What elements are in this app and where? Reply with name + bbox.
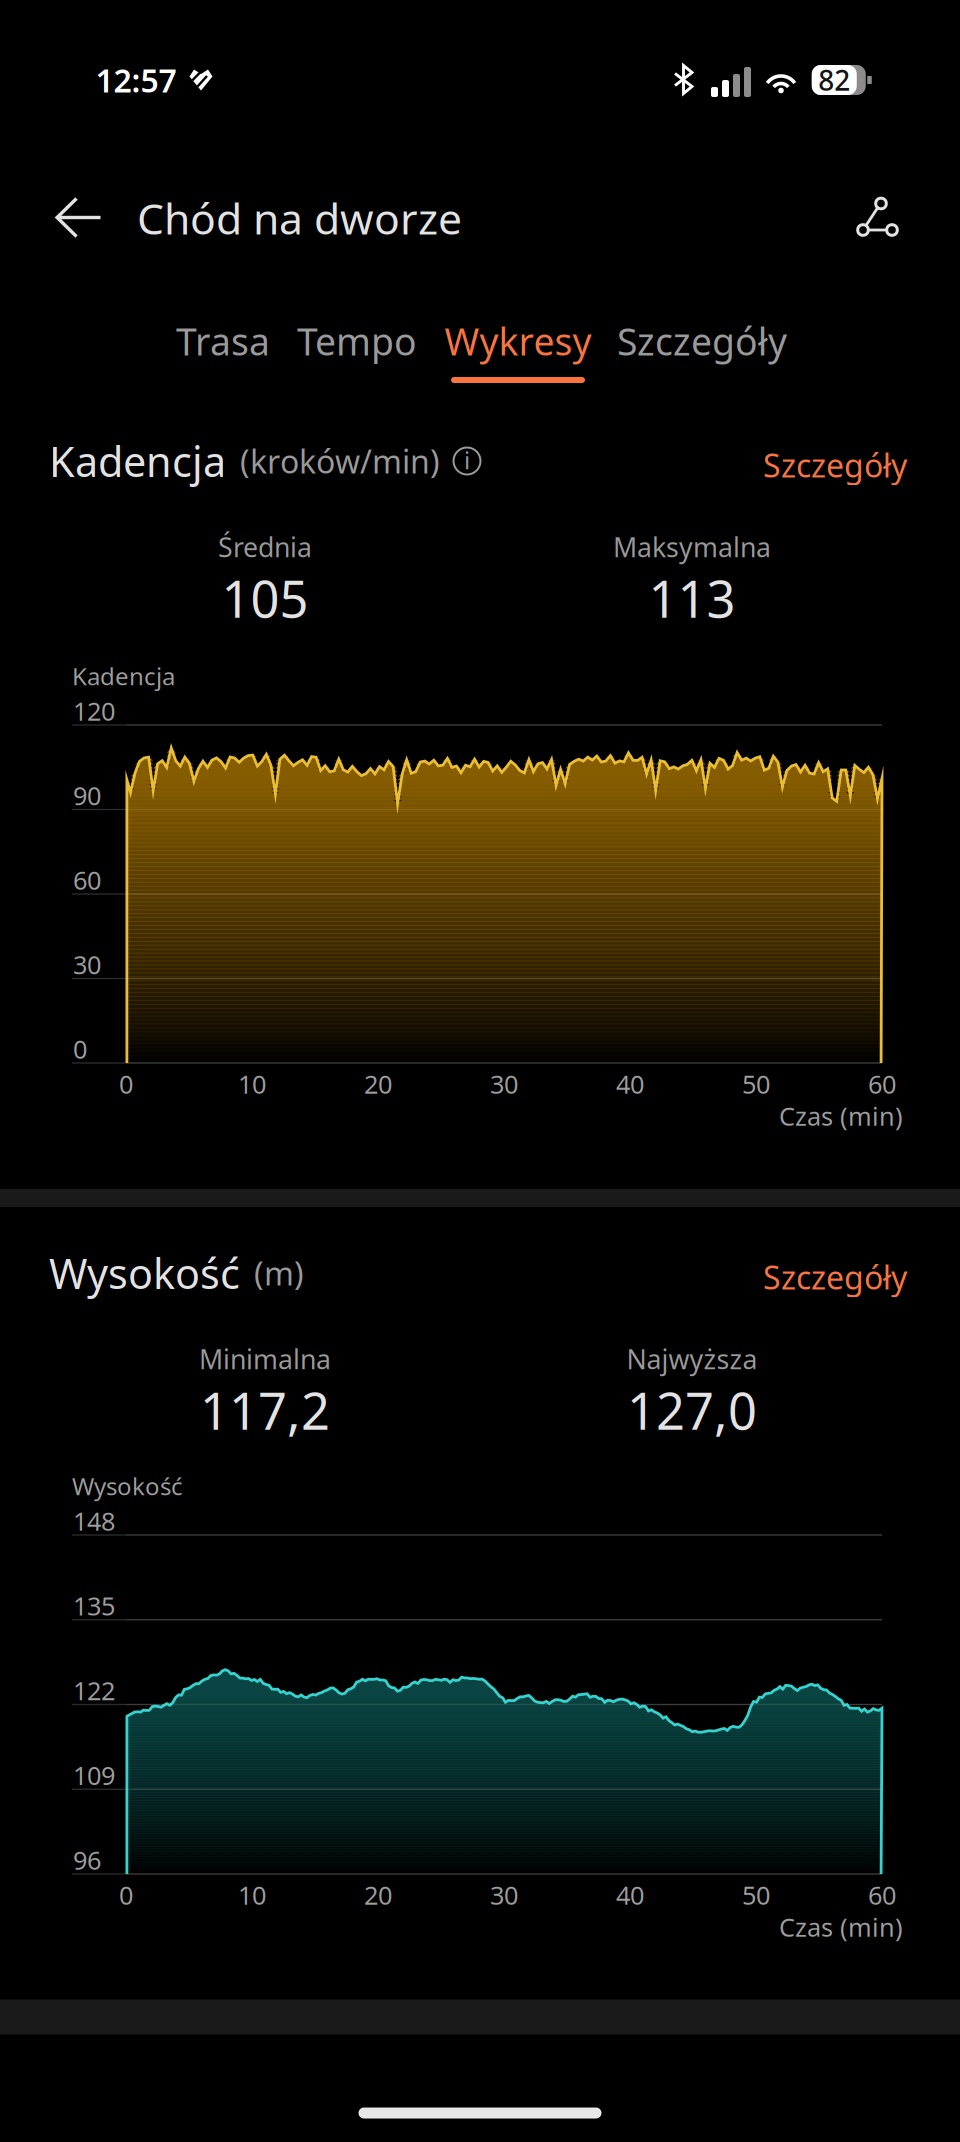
staticText: 122 (73, 1674, 115, 1707)
staticText: 30 (73, 948, 101, 981)
staticText: 90 (73, 779, 101, 812)
staticText: 60 (868, 1067, 896, 1101)
staticText: Czas (min) (779, 1910, 903, 1944)
staticText: 12:57 (95, 59, 176, 101)
staticText: 60 (73, 863, 101, 897)
staticText: 135 (73, 1589, 115, 1622)
staticText: Kadencja (49, 434, 226, 488)
button[interactable]: Tempo (292, 302, 422, 398)
staticText: (kroków/min) (240, 440, 440, 482)
staticText: Trasa (176, 316, 270, 366)
button[interactable]: Back (34, 173, 124, 263)
staticText: 0 (119, 1878, 133, 1912)
staticText: Wysokość (72, 1470, 183, 1502)
staticText: Szczegóły (763, 444, 907, 486)
staticText: 148 (73, 1504, 115, 1538)
staticText: 20 (364, 1878, 392, 1912)
staticText: Minimalna (199, 1341, 331, 1377)
staticText: 120 (73, 694, 115, 728)
button[interactable]: Szczegóły (612, 302, 791, 398)
staticText: Maksymalna (613, 529, 771, 565)
staticText: (m) (254, 1252, 304, 1294)
staticText: 10 (238, 1067, 266, 1101)
staticText: Szczegóły (763, 1256, 907, 1298)
staticText: Szczegóły (617, 316, 787, 366)
staticText: 60 (868, 1878, 896, 1912)
staticText: 30 (490, 1067, 518, 1101)
staticText: Wykresy (444, 316, 591, 366)
button[interactable]: Trasa (171, 302, 274, 398)
staticText: 40 (616, 1878, 644, 1912)
staticText: Średnia (218, 529, 312, 565)
staticText: 30 (490, 1878, 518, 1912)
staticText: 127,0 (627, 1376, 757, 1444)
staticText: 109 (73, 1758, 115, 1792)
staticText: 20 (364, 1067, 392, 1101)
staticText: 96 (73, 1843, 101, 1877)
staticText: 82 (818, 61, 850, 99)
staticText: 0 (119, 1067, 133, 1101)
staticText: Czas (min) (779, 1099, 903, 1133)
staticText: 50 (742, 1878, 770, 1912)
staticText: i (464, 444, 470, 476)
button[interactable]: Share (833, 173, 923, 263)
staticText: 105 (221, 564, 308, 632)
staticText: 113 (648, 564, 735, 632)
button[interactable]: Wykresy (439, 302, 597, 398)
staticText: Chód na dworze (137, 190, 462, 246)
staticText: Tempo (297, 316, 417, 366)
button[interactable]: Szczegóły (647, 432, 907, 498)
staticText: 10 (238, 1878, 266, 1912)
staticText: Wysokość (49, 1246, 240, 1300)
staticText: Kadencja (72, 660, 175, 692)
staticText: 50 (742, 1067, 770, 1101)
staticText: Najwyższa (626, 1341, 757, 1377)
button[interactable]: Szczegóły (647, 1244, 907, 1310)
staticText: 117,2 (200, 1376, 330, 1444)
staticText: 40 (616, 1067, 644, 1101)
staticText: 0 (73, 1032, 87, 1066)
